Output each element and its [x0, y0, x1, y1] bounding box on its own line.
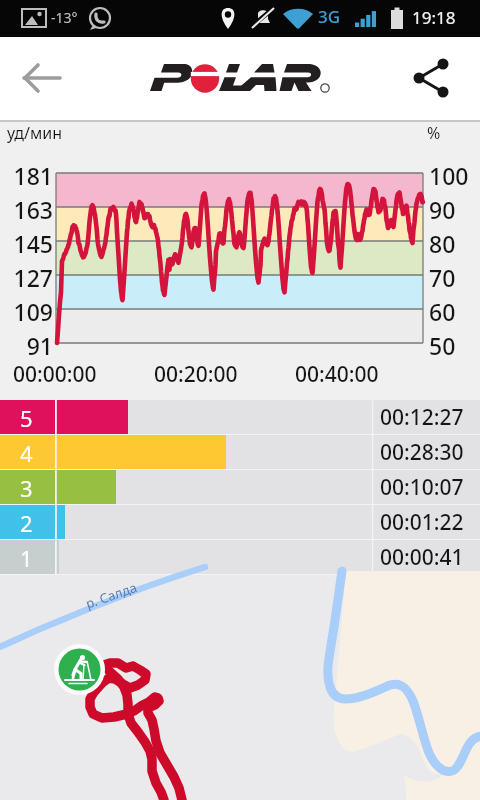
staticText: 3	[20, 473, 33, 503]
staticText: 127	[0, 262, 53, 293]
button[interactable]: Start point	[54, 644, 105, 695]
staticText: 00:28:30	[380, 438, 464, 467]
staticText: 1	[20, 543, 33, 573]
staticText: 00:40:00	[295, 360, 379, 389]
staticText: 109	[0, 296, 53, 327]
staticText: 80	[429, 228, 456, 259]
staticText: 00:01:22	[380, 508, 464, 537]
staticText: 70	[429, 262, 456, 293]
button[interactable]: 4	[0, 435, 480, 470]
staticText: 00:10:07	[380, 473, 464, 502]
staticText: 00:00:41	[380, 543, 464, 572]
button[interactable]: 2	[0, 505, 480, 540]
staticText: 181	[0, 160, 53, 191]
staticText: уд/мин	[7, 122, 63, 144]
staticText: 100	[429, 160, 469, 191]
staticText: 00:20:00	[154, 360, 238, 389]
staticText: 00:00:00	[13, 360, 97, 389]
button[interactable]: Back	[10, 54, 58, 102]
staticText: 145	[0, 228, 53, 259]
button[interactable]: 3	[0, 470, 480, 505]
staticText: 163	[0, 194, 53, 225]
staticText: 90	[429, 194, 456, 225]
staticText: 3G	[318, 5, 341, 28]
staticText: -13°	[51, 8, 78, 27]
staticText: 2	[20, 508, 33, 538]
staticText: 91	[0, 330, 53, 361]
staticText: 19:18	[412, 6, 456, 29]
button[interactable]: 5	[0, 400, 480, 435]
staticText: 50	[429, 330, 456, 361]
staticText: р. Салда	[83, 578, 140, 612]
staticText: 00:12:27	[380, 403, 464, 432]
staticText: 5	[20, 403, 33, 433]
staticText: 60	[429, 296, 456, 327]
staticText: 4	[20, 438, 33, 468]
staticText: %	[427, 122, 441, 144]
button[interactable]: 1	[0, 540, 480, 575]
button[interactable]: Share	[408, 54, 456, 102]
